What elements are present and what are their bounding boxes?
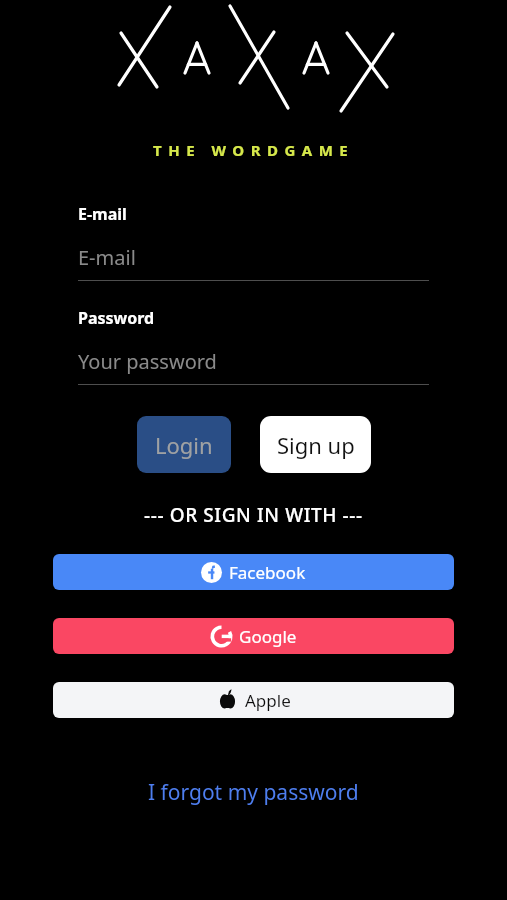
staticText: Your password: [78, 348, 217, 375]
staticText: I forgot my password: [148, 778, 359, 807]
button[interactable]: E-mail: [78, 203, 429, 281]
staticText: Sign up: [277, 430, 355, 460]
button[interactable]: Password: [78, 307, 429, 385]
button[interactable]: Google: [53, 618, 454, 654]
staticText: Google: [239, 625, 297, 648]
staticText: --- OR SIGN IN WITH ---: [144, 502, 363, 528]
staticText: Facebook: [229, 561, 306, 584]
staticText: Password: [78, 307, 155, 329]
staticText: E-mail: [78, 244, 136, 271]
button[interactable]: Sign up: [260, 416, 371, 473]
button[interactable]: I forgot my password: [0, 778, 507, 807]
staticText: THE WORDGAME: [153, 140, 355, 160]
button[interactable]: Apple: [53, 682, 454, 718]
staticText: Login: [155, 430, 213, 460]
button[interactable]: Login: [137, 416, 231, 473]
button[interactable]: Facebook: [53, 554, 454, 590]
staticText: E-mail: [78, 203, 127, 225]
staticText: Apple: [245, 689, 291, 712]
